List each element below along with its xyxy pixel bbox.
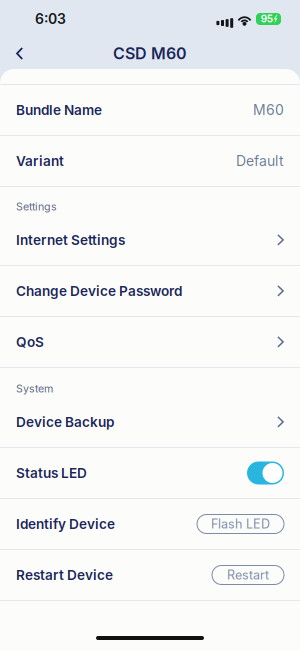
- staticText: Device Backup: [16, 414, 114, 430]
- staticText: Flash LED: [211, 516, 270, 532]
- staticText: CSD M60: [113, 44, 187, 63]
- staticText: Restart Device: [16, 567, 113, 583]
- staticText: QoS: [16, 334, 44, 350]
- staticText: 6:03: [35, 10, 66, 27]
- button[interactable]: QoS: [0, 317, 300, 367]
- staticText: Identify Device: [16, 516, 115, 532]
- staticText: Default: [236, 152, 284, 169]
- staticText: Settings: [16, 200, 57, 213]
- staticText: Bundle Name: [16, 102, 102, 118]
- staticText: Status LED: [16, 465, 87, 481]
- staticText: System: [16, 382, 53, 395]
- staticText: Change Device Password: [16, 283, 182, 299]
- staticText: Variant: [16, 153, 64, 169]
- staticText: M60: [253, 101, 284, 118]
- button[interactable]: Flash LED: [197, 514, 284, 533]
- staticText: Internet Settings: [16, 232, 125, 248]
- button[interactable]: Change Device Password: [0, 266, 300, 316]
- button[interactable]: Restart: [212, 565, 284, 584]
- button[interactable]: Device Backup: [0, 397, 300, 447]
- button[interactable]: Status LED: [247, 461, 284, 484]
- staticText: Restart: [227, 567, 269, 583]
- button[interactable]: Internet Settings: [0, 215, 300, 265]
- staticText: 95: [261, 13, 273, 25]
- button[interactable]: Back: [0, 38, 39, 69]
